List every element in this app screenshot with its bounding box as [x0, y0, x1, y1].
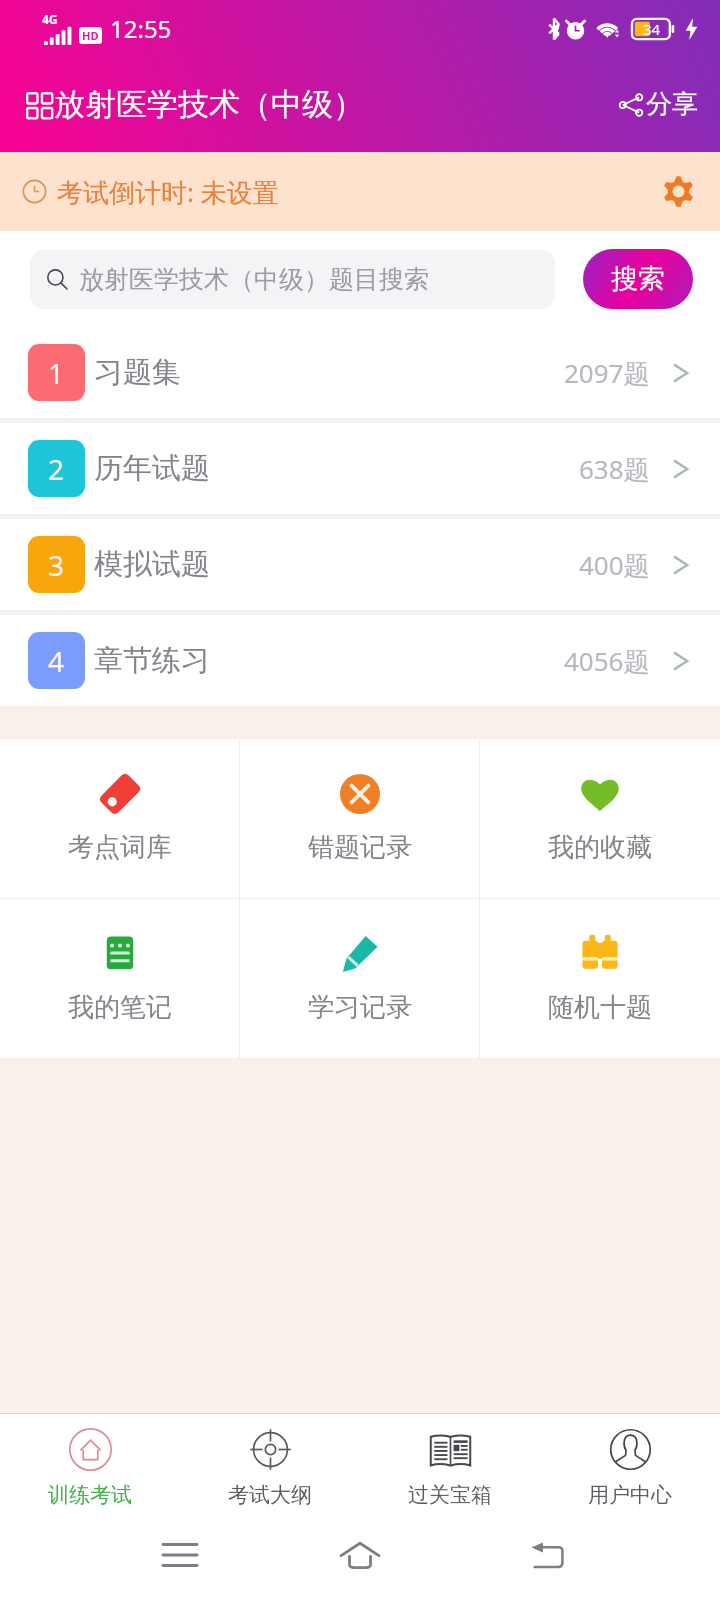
button[interactable]: 3: [0, 519, 720, 610]
staticText: 模拟试题: [94, 546, 210, 583]
button[interactable]: 设置: [659, 172, 698, 211]
staticText: 我的笔记: [68, 991, 172, 1024]
staticText: 我的收藏: [548, 831, 652, 864]
staticText: 2097题: [564, 355, 650, 391]
button[interactable]: 搜索: [583, 249, 693, 309]
staticText: 4056题: [564, 643, 650, 679]
staticText: 1: [48, 354, 65, 392]
staticText: 638题: [579, 451, 650, 487]
button[interactable]: 分享: [613, 80, 704, 129]
staticText: 习题集: [94, 354, 181, 391]
button[interactable]: 考试倒计时: 未设置: [0, 152, 720, 231]
staticText: 34: [643, 19, 661, 39]
staticText: 训练考试: [48, 1482, 132, 1508]
staticText: 过关宝箱: [408, 1482, 492, 1508]
button[interactable]: 我的笔记: [0, 899, 240, 1058]
button[interactable]: 2: [0, 423, 720, 514]
button[interactable]: 过关宝箱: [360, 1414, 540, 1510]
staticText: 2: [48, 450, 65, 488]
staticText: 搜索: [611, 262, 665, 296]
button[interactable]: 训练考试: [0, 1414, 180, 1510]
staticText: 考点词库: [68, 831, 172, 864]
button[interactable]: 1: [0, 327, 720, 418]
staticText: 学习记录: [308, 991, 412, 1024]
button[interactable]: 学习记录: [240, 899, 480, 1058]
staticText: 考试倒计时: 未设置: [57, 174, 279, 210]
staticText: 3: [48, 546, 65, 584]
staticText: 4G: [42, 11, 58, 27]
staticText: 放射医学技术（中级）: [54, 85, 364, 124]
button[interactable]: 考试大纲: [180, 1414, 360, 1510]
button[interactable]: Back: [518, 1525, 578, 1585]
button[interactable]: Menu: [150, 1525, 210, 1585]
button[interactable]: 4: [0, 615, 720, 706]
button[interactable]: 放射医学技术（中级）题目搜索: [30, 250, 555, 309]
button[interactable]: 我的收藏: [480, 739, 720, 898]
button[interactable]: 用户中心: [540, 1414, 720, 1510]
staticText: 考试大纲: [228, 1482, 312, 1508]
button[interactable]: 考点词库: [0, 739, 240, 898]
button[interactable]: Home: [330, 1525, 390, 1585]
button[interactable]: 错题记录: [240, 739, 480, 898]
staticText: 随机十题: [548, 991, 652, 1024]
staticText: 历年试题: [94, 450, 210, 487]
staticText: 错题记录: [308, 831, 412, 864]
staticText: 章节练习: [94, 642, 210, 679]
staticText: 400题: [579, 547, 650, 583]
staticText: 用户中心: [588, 1482, 672, 1508]
staticText: 12:55: [110, 12, 172, 45]
staticText: 分享: [646, 88, 698, 121]
staticText: HD: [82, 28, 99, 43]
button[interactable]: 随机十题: [480, 899, 720, 1058]
staticText: 4: [48, 642, 65, 680]
staticText: 放射医学技术（中级）题目搜索: [79, 264, 429, 295]
